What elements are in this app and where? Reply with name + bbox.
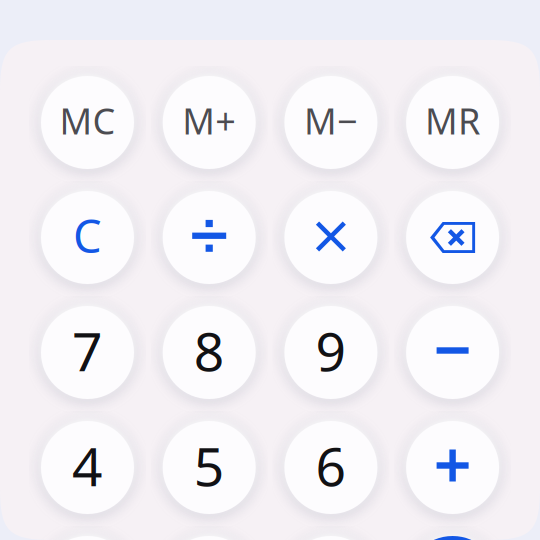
button[interactable]: 7: [41, 306, 134, 399]
staticText: 9: [315, 315, 346, 386]
button[interactable]: Equals: [406, 536, 499, 540]
button[interactable]: Delete: [406, 191, 499, 284]
button[interactable]: 9: [284, 306, 377, 399]
staticText: 6: [315, 430, 346, 501]
staticText: MC: [59, 97, 115, 144]
button[interactable]: Divide: [163, 191, 256, 284]
button[interactable]: 5: [163, 421, 256, 514]
button[interactable]: MC: [41, 76, 134, 169]
button[interactable]: M−: [284, 76, 377, 169]
button[interactable]: 1: [41, 536, 134, 540]
staticText: 5: [194, 430, 225, 501]
button[interactable]: 2: [163, 536, 256, 540]
staticText: 8: [194, 315, 225, 386]
button[interactable]: Subtract: [406, 306, 499, 399]
staticText: MR: [425, 97, 480, 144]
button[interactable]: M+: [163, 76, 256, 169]
staticText: 4: [72, 430, 103, 501]
staticText: M−: [304, 97, 358, 144]
button[interactable]: Multiply: [284, 191, 377, 284]
button[interactable]: 4: [41, 421, 134, 514]
staticText: C: [73, 205, 102, 266]
button[interactable]: Add: [406, 421, 499, 514]
button[interactable]: 6: [284, 421, 377, 514]
staticText: 7: [72, 315, 103, 386]
button[interactable]: 3: [284, 536, 377, 540]
button[interactable]: MR: [406, 76, 499, 169]
button[interactable]: C: [41, 191, 134, 284]
button[interactable]: 8: [163, 306, 256, 399]
staticText: M+: [182, 97, 236, 144]
